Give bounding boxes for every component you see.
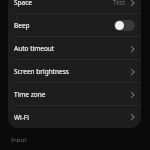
button[interactable]: Wi-Fi — [8, 106, 141, 128]
button[interactable]: Beep — [8, 14, 141, 37]
staticText: Time zone — [14, 90, 129, 99]
staticText: Beep — [14, 21, 114, 30]
staticText: Screen brightness — [14, 67, 129, 76]
staticText: Auto timeout — [14, 44, 129, 53]
button[interactable]: Space — [8, 0, 141, 14]
staticText: Input — [11, 136, 27, 144]
staticText: Test — [113, 0, 126, 7]
button[interactable]: Beep toggle — [114, 20, 135, 31]
staticText: Wi-Fi — [14, 113, 129, 122]
button[interactable]: Time zone — [8, 83, 141, 106]
button[interactable]: Auto timeout — [8, 37, 141, 60]
staticText: Space — [14, 0, 113, 7]
button[interactable]: Screen brightness — [8, 60, 141, 83]
